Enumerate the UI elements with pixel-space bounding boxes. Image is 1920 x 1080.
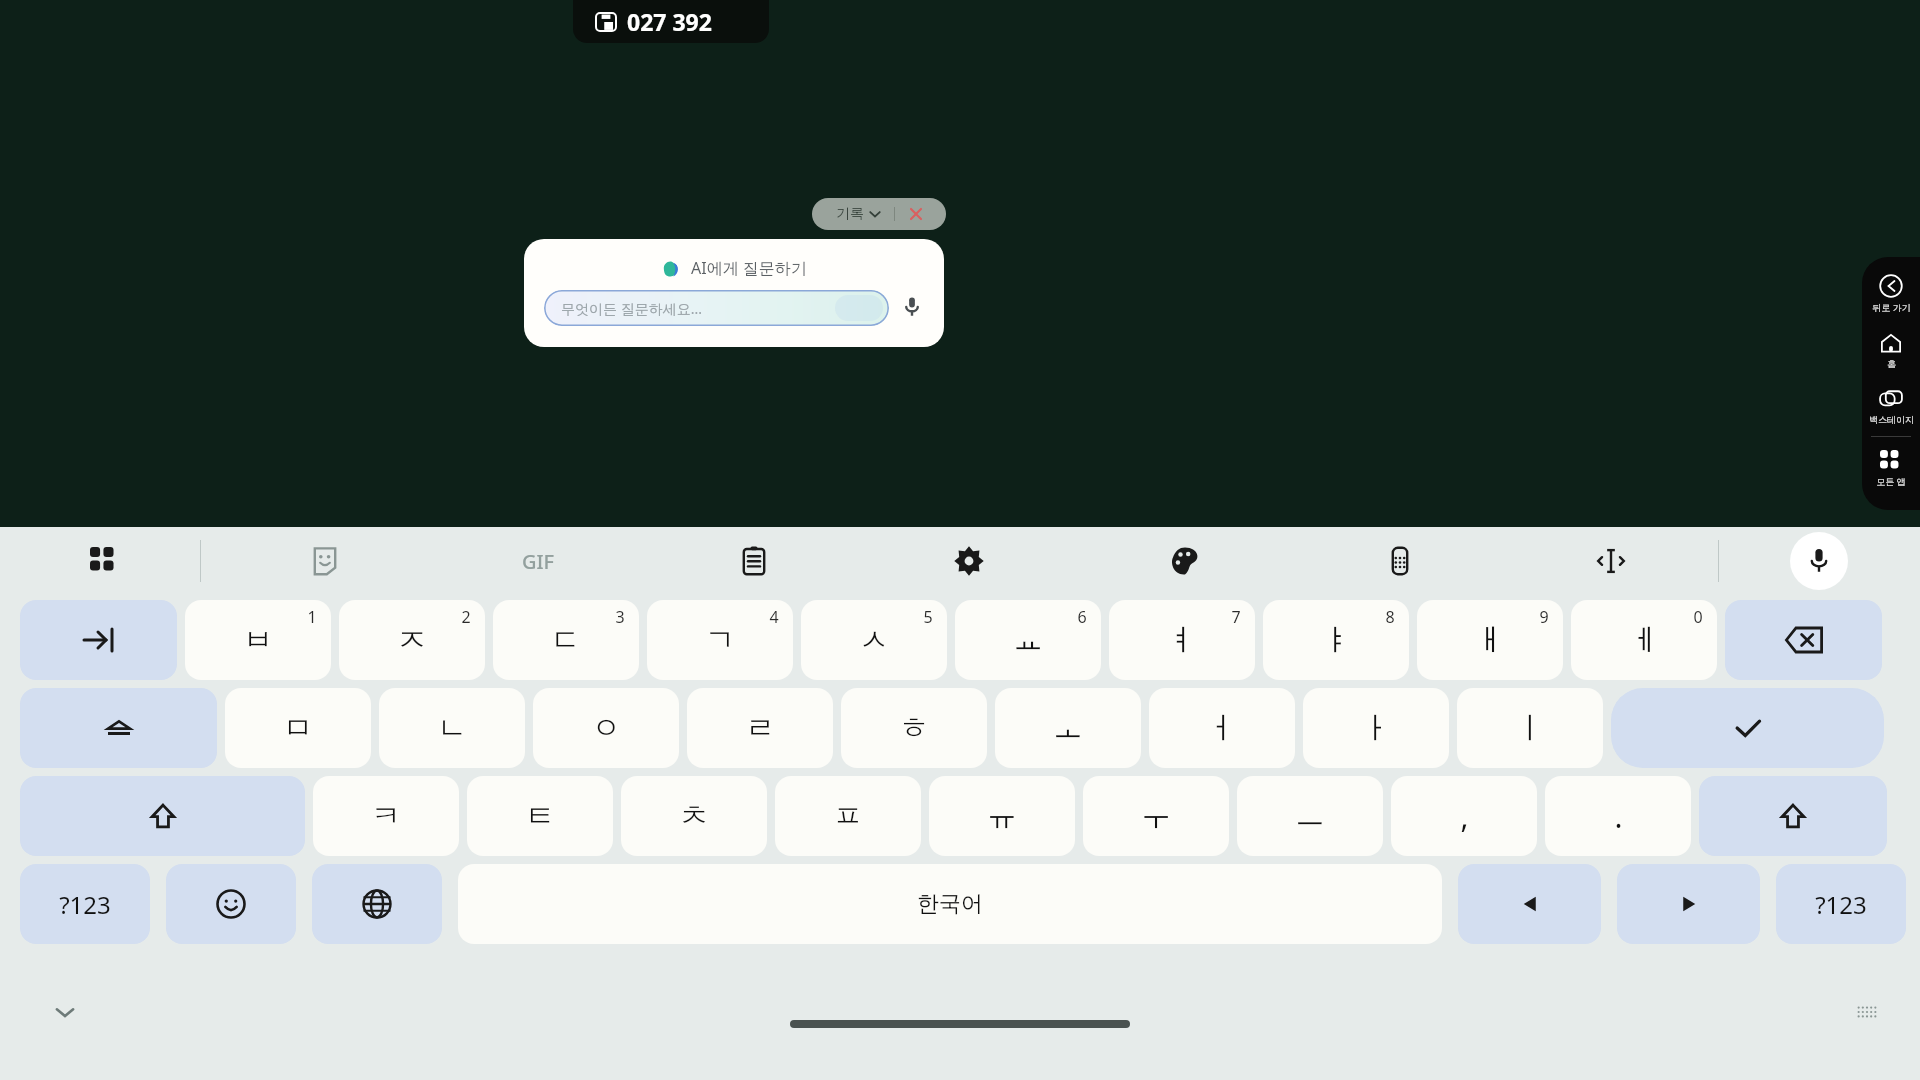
staticText: ㅑ (1321, 621, 1351, 659)
staticText: 6 (1077, 606, 1087, 628)
button[interactable]: Tab (20, 600, 177, 680)
button[interactable]: All apps (1862, 447, 1920, 490)
staticText: 4 (769, 606, 779, 628)
staticText: 1 (307, 606, 317, 628)
button[interactable]: ?123 (20, 864, 150, 944)
staticText: , (1460, 796, 1469, 837)
button[interactable]: ?123 (1776, 864, 1906, 944)
staticText: 백스테이지 (1869, 414, 1914, 425)
button[interactable]: Keyboard modes (82, 539, 126, 583)
button[interactable]: Caps lock (20, 688, 217, 768)
button[interactable]: ㅔ (1571, 600, 1717, 680)
button[interactable]: Back (1862, 271, 1920, 316)
button[interactable]: ㅕ (1109, 600, 1255, 680)
button[interactable]: ㅛ (955, 600, 1101, 680)
staticText: ㅜ (1141, 797, 1171, 835)
button[interactable]: Shift right (1699, 776, 1887, 856)
staticText: ㅔ (1629, 621, 1659, 659)
button[interactable]: Enter (1611, 688, 1884, 768)
staticText: 모든 앱 (1876, 475, 1906, 487)
button[interactable]: ㄹ (687, 688, 833, 768)
button[interactable]: . (1545, 776, 1691, 856)
button[interactable]: ㅋ (313, 776, 459, 856)
button[interactable]: ㅇ (533, 688, 679, 768)
button[interactable]: GIF (513, 536, 563, 586)
staticText: ㄷ (551, 621, 581, 659)
button[interactable]: One-handed mode (1375, 536, 1425, 586)
staticText: 무엇이든 질문하세요... (561, 299, 702, 318)
staticText: GIF (522, 548, 555, 575)
button[interactable]: ㅁ (225, 688, 371, 768)
button[interactable]: Emoji (166, 864, 296, 944)
staticText: ㅡ (1295, 797, 1325, 835)
staticText: ㅋ (371, 797, 401, 835)
staticText: ㄱ (705, 621, 735, 659)
staticText: 뒤로 가기 (1872, 301, 1911, 313)
staticText: ㅗ (1053, 709, 1083, 747)
button[interactable]: ㅣ (1457, 688, 1603, 768)
button[interactable]: ㅏ (1303, 688, 1449, 768)
staticText: 2 (461, 606, 471, 628)
button[interactable]: Home (1862, 328, 1920, 372)
button[interactable]: Clipboard (729, 536, 779, 586)
button[interactable]: Settings (944, 536, 994, 586)
button[interactable]: ㅐ (1417, 600, 1563, 680)
button[interactable]: 027 392 (573, 0, 769, 43)
button[interactable]: Theme (1160, 536, 1210, 586)
button[interactable]: ㅈ (339, 600, 485, 680)
button[interactable]: ㄷ (493, 600, 639, 680)
staticText: ㅁ (283, 709, 313, 747)
staticText: 027 392 (627, 6, 712, 37)
staticText: ㅅ (859, 621, 889, 659)
button[interactable]: Backspace (1725, 600, 1882, 680)
button[interactable]: ㅜ (1083, 776, 1229, 856)
staticText: AI에게 질문하기 (691, 257, 807, 279)
staticText: ㅂ (243, 621, 273, 659)
button[interactable]: Resize keyboard (1856, 1001, 1878, 1023)
button[interactable]: ㅠ (929, 776, 1075, 856)
button[interactable]: ㅂ (185, 600, 331, 680)
button[interactable]: ㅍ (775, 776, 921, 856)
button[interactable]: Change language (312, 864, 442, 944)
staticText: ㅇ (591, 709, 621, 747)
button[interactable]: ㄱ (647, 600, 793, 680)
button[interactable]: ㅌ (467, 776, 613, 856)
button[interactable]: Move cursor right (1617, 864, 1760, 944)
staticText: ㅓ (1207, 709, 1237, 747)
staticText: ㅊ (679, 797, 709, 835)
button[interactable]: ㅡ (1237, 776, 1383, 856)
button[interactable]: , (1391, 776, 1537, 856)
staticText: ㅍ (833, 797, 863, 835)
button[interactable]: Voice input (900, 295, 926, 321)
button[interactable]: 기록 (812, 198, 946, 230)
button[interactable]: ㅅ (801, 600, 947, 680)
staticText: 0 (1693, 606, 1703, 628)
staticText: ㅏ (1361, 709, 1391, 747)
staticText: ㅐ (1475, 621, 1505, 659)
button[interactable]: Stickers (300, 536, 350, 586)
button[interactable]: Voice typing (1790, 532, 1848, 590)
button[interactable]: ㅑ (1263, 600, 1409, 680)
button[interactable]: Move cursor left (1458, 864, 1601, 944)
button[interactable]: 무엇이든 질문하세요... (544, 290, 889, 326)
staticText: 한국어 (917, 890, 983, 918)
button[interactable]: ㅊ (621, 776, 767, 856)
staticText: 기록 (836, 205, 864, 223)
button[interactable]: Cursor control (1586, 536, 1636, 586)
button[interactable]: ㅓ (1149, 688, 1295, 768)
staticText: ㅣ (1515, 709, 1545, 747)
button[interactable]: ㅗ (995, 688, 1141, 768)
staticText: 8 (1385, 606, 1395, 628)
staticText: ㄴ (437, 709, 467, 747)
staticText: 3 (615, 606, 625, 628)
staticText: ㅎ (899, 709, 929, 747)
staticText: 9 (1539, 606, 1549, 628)
button[interactable]: Shift (20, 776, 305, 856)
staticText: ㄹ (745, 709, 775, 747)
button[interactable]: Hide keyboard (48, 995, 82, 1029)
staticText: 홈 (1887, 358, 1896, 369)
button[interactable]: ㄴ (379, 688, 525, 768)
button[interactable]: 한국어 (458, 864, 1442, 944)
button[interactable]: Backstage (1862, 382, 1920, 428)
button[interactable]: ㅎ (841, 688, 987, 768)
